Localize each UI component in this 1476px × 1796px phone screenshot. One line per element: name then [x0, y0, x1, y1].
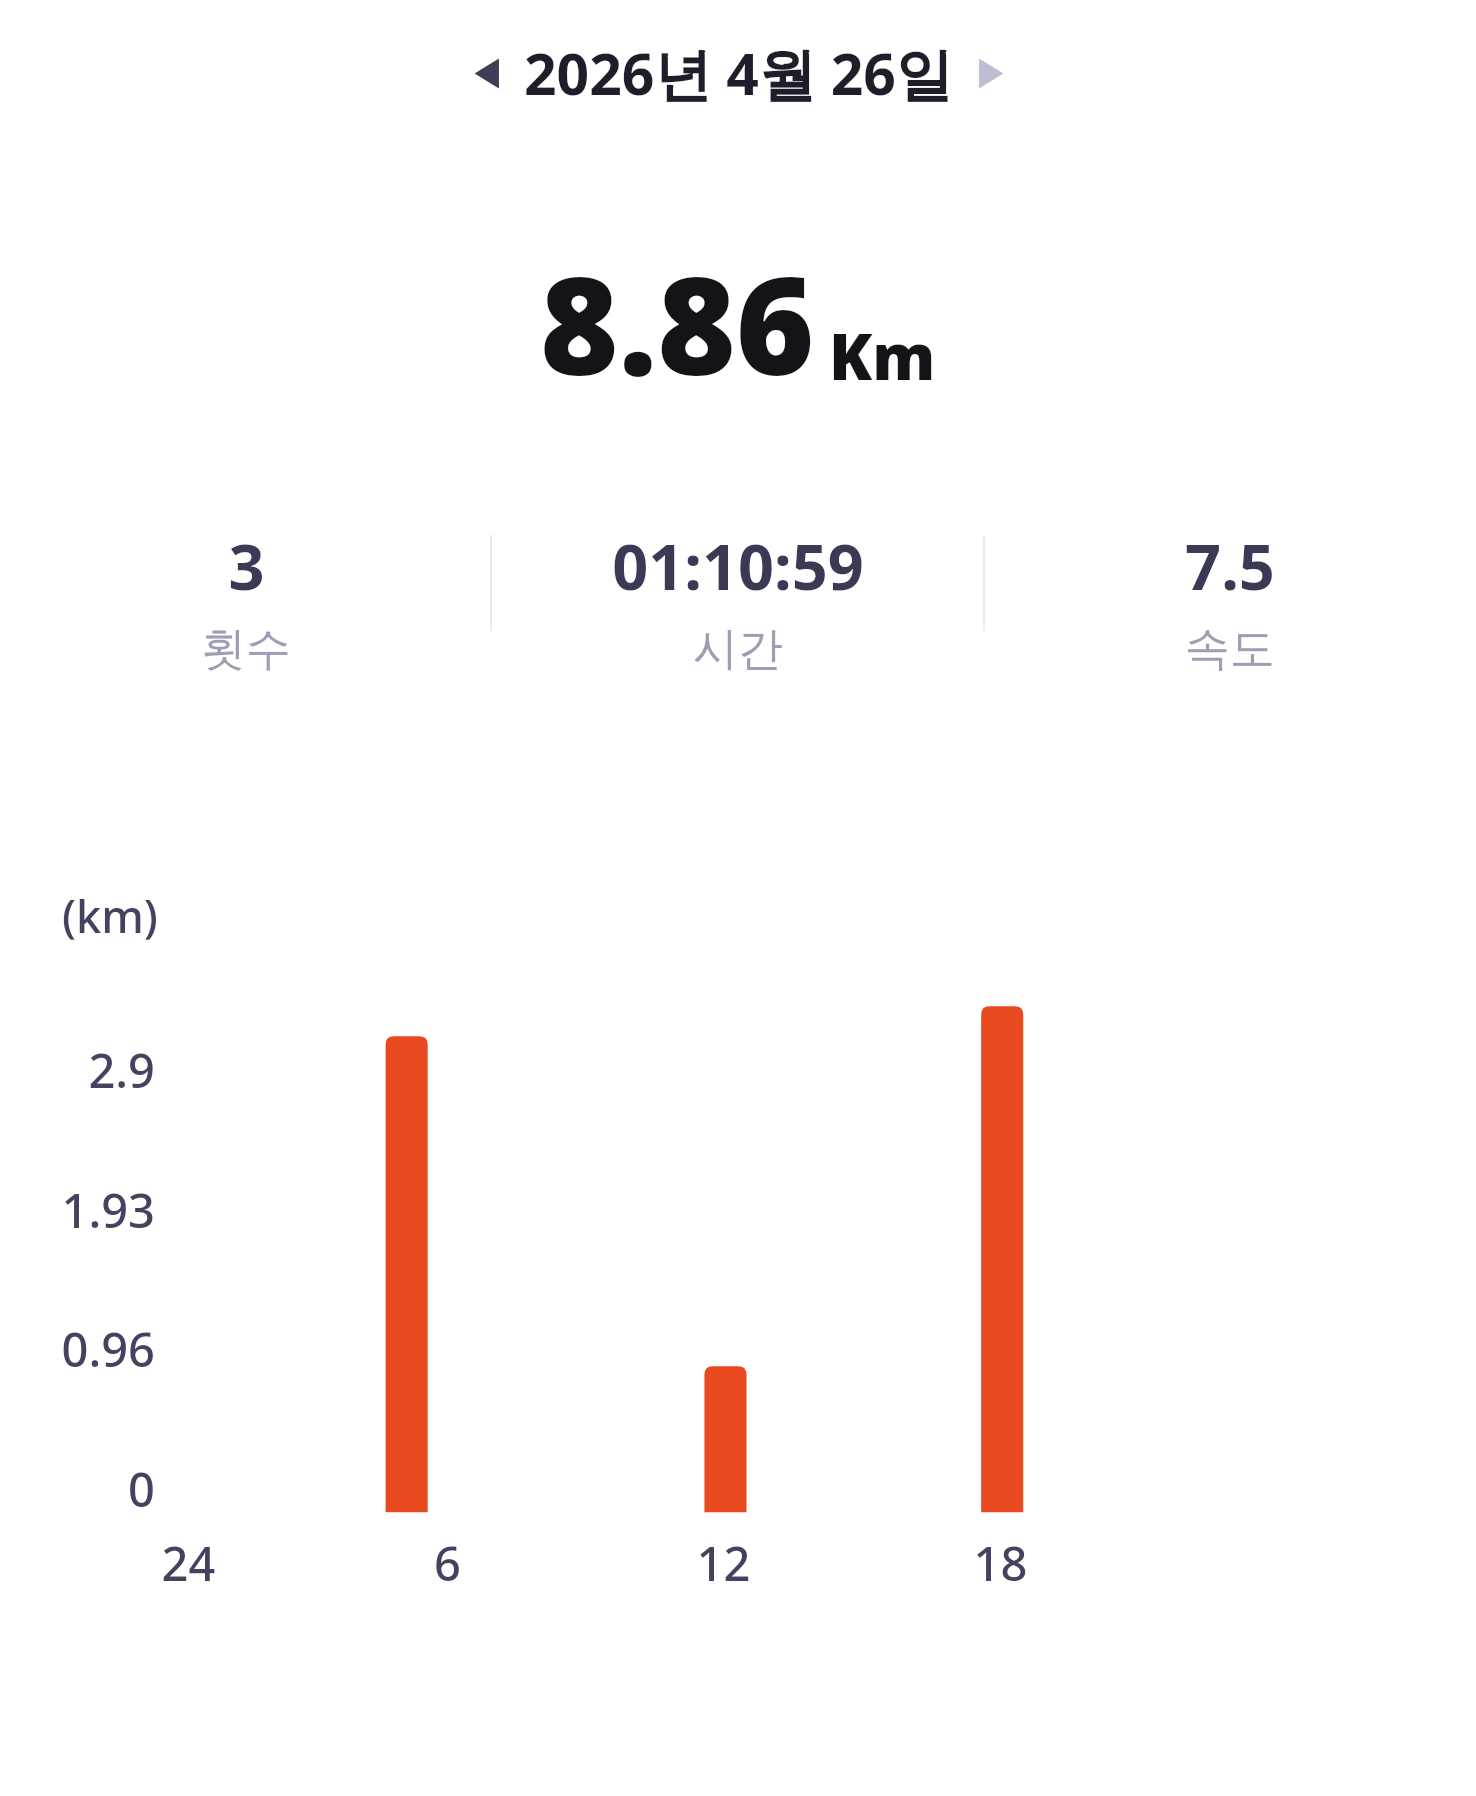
- button[interactable]: 01:10:59: [492, 523, 984, 678]
- staticText: 2.9: [0, 1038, 155, 1102]
- staticText: 3: [228, 523, 265, 609]
- staticText: 횟수: [201, 621, 291, 678]
- staticText: 0.96: [0, 1317, 155, 1381]
- staticText: 시간: [693, 621, 783, 678]
- staticText: 7.5: [1185, 523, 1275, 609]
- staticText: (km): [62, 885, 158, 946]
- staticText: 12: [635, 1531, 812, 1595]
- button[interactable]: Next day: [963, 45, 1019, 101]
- staticText: 6: [359, 1531, 536, 1595]
- staticText: 18: [912, 1531, 1089, 1595]
- button[interactable]: 3: [0, 523, 492, 678]
- button[interactable]: 7.5: [984, 523, 1476, 678]
- staticText: 01:10:59: [612, 523, 864, 609]
- staticText: 2026년 4월 26일: [524, 34, 953, 112]
- staticText: 속도: [1185, 621, 1275, 678]
- staticText: 8.86: [540, 232, 815, 415]
- staticText: Km: [829, 313, 936, 399]
- staticText: 0: [0, 1457, 155, 1521]
- staticText: 1.93: [0, 1178, 155, 1242]
- button[interactable]: Previous day: [458, 45, 514, 101]
- staticText: 24: [100, 1531, 277, 1595]
